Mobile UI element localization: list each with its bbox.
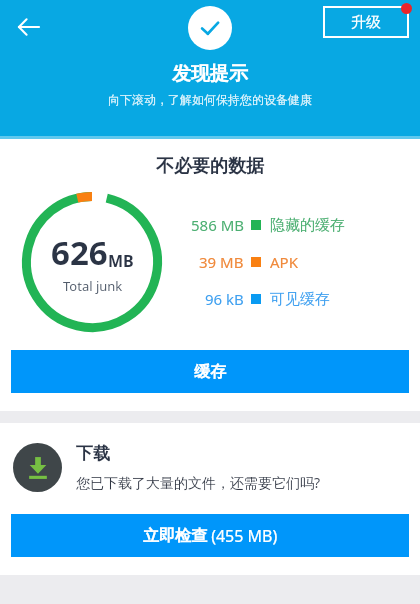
staticText: (455 MB) (207, 525, 278, 547)
staticText: 升级 (351, 13, 381, 32)
staticText: 您已下载了大量的文件，还需要它们吗? (76, 473, 321, 492)
staticText: 626 (51, 230, 108, 275)
staticText: MB (108, 250, 134, 272)
staticText: 96 kB (205, 289, 244, 309)
staticText: 39 MB (199, 252, 244, 272)
staticText: 缓存 (194, 362, 226, 382)
staticText: 不必要的数据 (0, 155, 420, 178)
staticText: 立即检查 (143, 526, 207, 546)
staticText: 发现提示 (172, 62, 248, 86)
staticText: 隐藏的缓存 (270, 216, 345, 235)
staticText: Total junk (63, 277, 123, 295)
staticText: 586 MB (191, 215, 244, 235)
staticText: 向下滚动，了解如何保持您的设备健康 (108, 92, 312, 107)
button[interactable]: 立即检查 (11, 514, 409, 557)
staticText: APK (270, 252, 298, 272)
button[interactable]: 缓存 (11, 350, 409, 393)
staticText: 下载 (76, 443, 110, 464)
button[interactable]: 升级 (324, 7, 408, 37)
button[interactable]: Back (6, 4, 52, 50)
staticText: 可见缓存 (270, 290, 330, 309)
